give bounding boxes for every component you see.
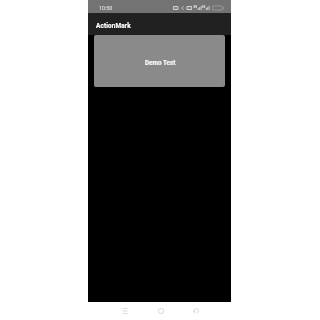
staticText: Demo Test: [145, 59, 176, 66]
button[interactable]: Back: [190, 305, 202, 317]
button[interactable]: Home: [155, 305, 167, 317]
button[interactable]: ActionMark: [88, 13, 231, 36]
staticText: ActionMark: [96, 22, 131, 30]
button[interactable]: Demo Test: [94, 35, 225, 87]
staticText: 10:50: [99, 5, 113, 11]
button[interactable]: Recents: [119, 305, 131, 317]
